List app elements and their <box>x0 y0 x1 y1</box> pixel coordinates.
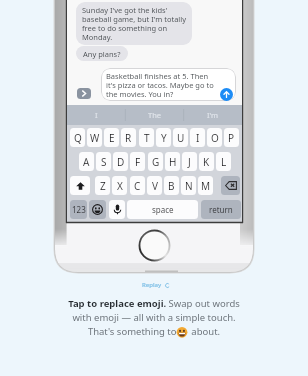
button[interactable]: S <box>96 152 111 171</box>
button[interactable]: I <box>190 128 205 147</box>
button[interactable]: V <box>147 176 162 195</box>
button[interactable]: E <box>104 128 119 147</box>
button[interactable]: 123 <box>70 200 87 219</box>
button[interactable]: Basketball finishes at 5. Then it's pizz… <box>101 68 236 101</box>
button[interactable]: W <box>87 128 102 147</box>
staticText: Basketball finishes at 5. Then it's pizz… <box>106 71 216 99</box>
button[interactable]: I'm <box>184 105 242 125</box>
staticText: R <box>125 131 132 145</box>
staticText: G <box>152 155 160 169</box>
staticText: D <box>117 155 125 169</box>
staticText: U <box>177 131 185 145</box>
staticText: space <box>152 204 174 215</box>
staticText: J <box>188 155 191 169</box>
staticText: Replay <box>142 281 162 289</box>
staticText: E <box>109 131 115 145</box>
button[interactable]: The <box>126 105 184 125</box>
staticText: W <box>90 131 100 145</box>
staticText: I <box>95 110 98 120</box>
button[interactable]: space <box>127 200 198 219</box>
button[interactable]: J <box>182 152 197 171</box>
staticText: A <box>83 155 90 169</box>
staticText: I <box>196 131 200 145</box>
staticText: return <box>209 204 233 215</box>
staticText: M <box>201 179 211 193</box>
staticText: The <box>148 110 162 120</box>
button[interactable]: return <box>201 200 241 219</box>
button[interactable]: Backspace <box>221 176 240 195</box>
button[interactable]: Dictate <box>109 200 125 219</box>
button[interactable]: U <box>173 128 188 147</box>
staticText: Y <box>161 131 167 145</box>
staticText: X <box>117 179 123 193</box>
button[interactable]: P <box>224 128 239 147</box>
button[interactable]: T <box>139 128 154 147</box>
staticText: Q <box>74 131 82 145</box>
button[interactable]: Replay <box>142 281 170 289</box>
button[interactable]: B <box>164 176 179 195</box>
staticText: B <box>168 179 175 193</box>
button[interactable]: Z <box>95 176 110 195</box>
staticText: L <box>221 155 227 169</box>
button[interactable]: K <box>199 152 214 171</box>
button[interactable]: H <box>165 152 180 171</box>
button[interactable]: O <box>207 128 222 147</box>
button[interactable]: G <box>148 152 163 171</box>
button[interactable]: M <box>198 176 213 195</box>
staticText: T <box>144 131 150 145</box>
staticText: Sunday I've got the kids' baseball game,… <box>82 5 187 42</box>
staticText: Z <box>100 179 106 193</box>
button[interactable]: Emoji <box>89 200 106 219</box>
staticText: N <box>185 179 193 193</box>
staticText: I'm <box>207 110 219 120</box>
staticText: Tap to replace emoji. Swap out words wit… <box>68 297 240 338</box>
staticText: H <box>169 155 177 169</box>
button[interactable]: Y <box>156 128 171 147</box>
staticText: 123 <box>72 204 86 215</box>
button[interactable]: D <box>113 152 128 171</box>
button[interactable]: R <box>121 128 136 147</box>
button[interactable]: N <box>181 176 196 195</box>
button[interactable]: A <box>79 152 94 171</box>
staticText: Any plans? <box>83 49 121 59</box>
button[interactable]: F <box>130 152 145 171</box>
button[interactable]: Show apps <box>77 88 91 99</box>
button[interactable]: L <box>216 152 231 171</box>
staticText: P <box>228 131 235 145</box>
staticText: C <box>134 179 141 193</box>
button[interactable]: Send <box>220 88 233 101</box>
button[interactable]: Q <box>70 128 85 147</box>
button[interactable]: Shift <box>70 176 90 195</box>
button[interactable]: X <box>112 176 127 195</box>
staticText: K <box>203 155 210 169</box>
button[interactable]: C <box>130 176 145 195</box>
staticText: F <box>135 155 141 169</box>
staticText: S <box>101 155 107 169</box>
staticText: V <box>152 179 158 193</box>
staticText: O <box>211 131 219 145</box>
